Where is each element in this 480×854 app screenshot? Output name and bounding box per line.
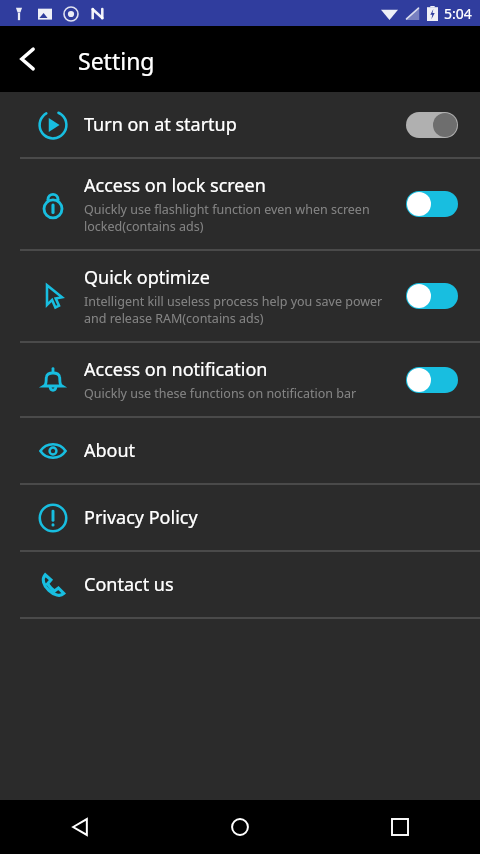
button[interactable]: Access on lock screen bbox=[0, 159, 480, 249]
staticText: Intelligent kill useless process help yo… bbox=[84, 293, 396, 327]
button[interactable]: Toggle on bbox=[404, 363, 460, 397]
button[interactable]: About bbox=[0, 418, 480, 483]
button[interactable]: Recent apps bbox=[320, 800, 480, 854]
staticText: Quick optimize bbox=[84, 265, 210, 290]
button[interactable]: Contact us bbox=[0, 552, 480, 617]
staticText: 5:04 bbox=[444, 4, 472, 23]
staticText: Quickly use flashlight function even whe… bbox=[84, 201, 396, 235]
button[interactable]: Back bbox=[0, 31, 56, 87]
staticText: About bbox=[84, 438, 136, 463]
button[interactable]: Toggle off bbox=[404, 108, 460, 142]
button[interactable]: Access on notification bbox=[0, 343, 480, 416]
staticText: Turn on at startup bbox=[84, 112, 237, 137]
staticText: Access on notification bbox=[84, 357, 268, 382]
button[interactable]: Privacy Policy bbox=[0, 485, 480, 550]
button[interactable]: Home bbox=[160, 800, 320, 854]
button[interactable]: Quick optimize bbox=[0, 251, 480, 341]
button[interactable]: Turn on at startup bbox=[0, 92, 480, 157]
button[interactable]: Back bbox=[0, 800, 160, 854]
staticText: Setting bbox=[78, 45, 155, 76]
staticText: Contact us bbox=[84, 572, 174, 597]
staticText: Privacy Policy bbox=[84, 505, 198, 530]
button[interactable]: Toggle on bbox=[404, 279, 460, 313]
button[interactable]: Toggle on bbox=[404, 187, 460, 221]
staticText: Quickly use these functions on notificat… bbox=[84, 385, 357, 402]
staticText: Access on lock screen bbox=[84, 173, 266, 198]
